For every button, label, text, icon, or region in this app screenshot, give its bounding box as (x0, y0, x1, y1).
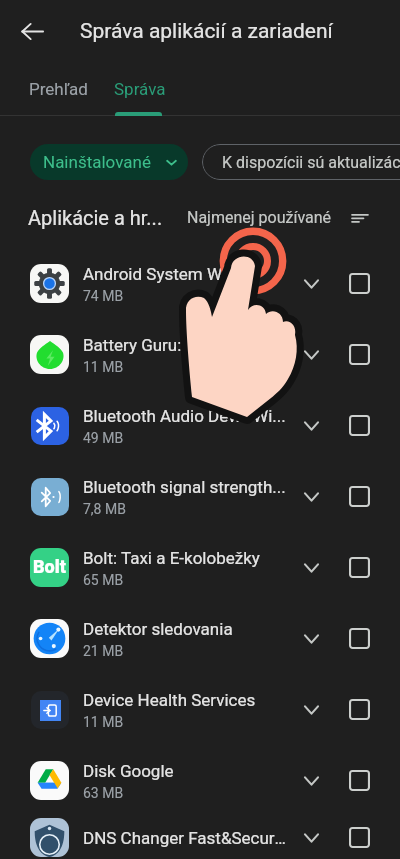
button[interactable]: Nainštalované (30, 144, 188, 180)
staticText: 7,8 MB (83, 501, 126, 517)
staticText: 74 MB (83, 288, 124, 304)
button[interactable]: Expand (293, 337, 329, 373)
button[interactable]: Expand (293, 550, 329, 586)
button[interactable]: DNS Changer Fast&Secure... (0, 816, 400, 859)
button[interactable]: Select app (349, 344, 370, 365)
button[interactable]: Select app (349, 770, 370, 791)
staticText: Aplikácie a hr... (28, 206, 163, 229)
staticText: Bolt (33, 556, 66, 577)
staticText: Device Health Services (83, 690, 256, 710)
button[interactable]: Select app (349, 827, 370, 848)
staticText: Android System We... (83, 264, 245, 284)
staticText: Disk Google (83, 761, 174, 781)
staticText: Detektor sledovania (83, 619, 233, 639)
staticText: Bolt: Taxi a E-kolobežky (83, 548, 260, 568)
staticText: 11 MB (83, 714, 124, 730)
button[interactable]: Expand (293, 621, 329, 657)
button[interactable]: Select app (349, 699, 370, 720)
button[interactable]: Expand (293, 408, 329, 444)
button[interactable]: Prehľad (0, 62, 116, 116)
button[interactable]: Select app (349, 415, 370, 436)
button[interactable]: Android System We... (0, 248, 400, 319)
button[interactable]: Device Health Services (0, 674, 400, 745)
staticText: Bluetooth signal strength... (83, 477, 286, 497)
staticText: Battery Guru: (83, 335, 182, 355)
staticText: Prehľad (29, 79, 88, 99)
staticText: Nainštalované (43, 152, 151, 172)
staticText: Správa aplikácií a zariadení (80, 19, 333, 44)
button[interactable]: Select app (349, 628, 370, 649)
staticText: K dispozícii sú aktualizácie (222, 153, 400, 172)
staticText: 63 MB (83, 785, 124, 801)
button[interactable]: Select app (349, 557, 370, 578)
button[interactable]: Správa (100, 62, 180, 116)
button[interactable]: Expand (293, 479, 329, 515)
button[interactable]: Detektor sledovania (0, 603, 400, 674)
staticText: 49 MB (83, 430, 124, 446)
button[interactable]: Expand (293, 266, 329, 302)
button[interactable]: Battery Guru: (0, 319, 400, 390)
button[interactable]: Najmenej používané (187, 208, 368, 227)
staticText: 21 MB (83, 643, 124, 659)
button[interactable]: Back (12, 11, 52, 51)
button[interactable]: Expand (293, 692, 329, 728)
button[interactable]: Disk Google (0, 745, 400, 816)
button[interactable]: Bluetooth signal strength... (0, 461, 400, 532)
staticText: Správa (114, 79, 166, 99)
staticText: Najmenej používané (187, 208, 332, 227)
button[interactable]: Select app (349, 486, 370, 507)
button[interactable]: K dispozícii sú aktualizácie (202, 144, 400, 180)
staticText: 11 MB (83, 359, 124, 375)
button[interactable]: Bolt (0, 532, 400, 603)
button[interactable]: Select app (349, 273, 370, 294)
staticText: Bluetooth Audio Dev... Wi... (83, 406, 286, 426)
button[interactable]: Expand (293, 763, 329, 799)
staticText: 65 MB (83, 572, 124, 588)
staticText: DNS Changer Fast&Secure... (83, 828, 293, 848)
button[interactable]: Expand (293, 820, 329, 856)
button[interactable]: Bluetooth Audio Dev... Wi... (0, 390, 400, 461)
